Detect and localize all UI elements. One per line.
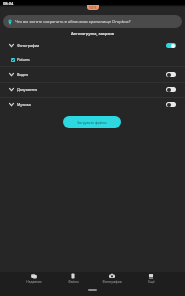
staticText: Автозагрузка, заархив: [0, 31, 185, 36]
staticText: Видео: [17, 72, 29, 77]
staticText: Pictures: [17, 57, 30, 62]
staticText: Фотографии: [17, 43, 40, 48]
staticText: Ещё: [148, 280, 155, 284]
button[interactable]: Недавние: [21, 273, 47, 284]
staticText: 08:04: [3, 1, 14, 6]
button[interactable]: Файлы: [60, 273, 86, 284]
staticText: Недавние: [26, 280, 42, 284]
staticText: Документы: [17, 87, 38, 92]
button[interactable]: Включить: [166, 72, 176, 77]
staticText: Музыка: [17, 102, 31, 107]
staticText: Что вы хотите сохранить в облачном храни…: [15, 19, 131, 25]
button[interactable]: Фотографии: [0, 40, 185, 51]
button[interactable]: Документы: [0, 84, 185, 95]
button[interactable]: Что вы хотите сохранить в облачном храни…: [3, 15, 182, 28]
staticText: Фотографии: [102, 280, 122, 284]
button[interactable]: Музыка: [0, 99, 185, 110]
staticText: Загрузить файлы: [77, 120, 107, 125]
button[interactable]: Загрузить файлы: [63, 116, 121, 128]
button[interactable]: Выключить: [166, 43, 176, 48]
button[interactable]: Pictures: [0, 54, 185, 65]
button[interactable]: Включить: [166, 87, 176, 92]
button[interactable]: Включить: [166, 102, 176, 107]
button[interactable]: Фотографии: [99, 273, 125, 284]
staticText: 100 %: [89, 6, 97, 10]
button[interactable]: Ещё: [138, 273, 164, 284]
staticText: Файлы: [68, 280, 79, 284]
button[interactable]: Видео: [0, 69, 185, 80]
